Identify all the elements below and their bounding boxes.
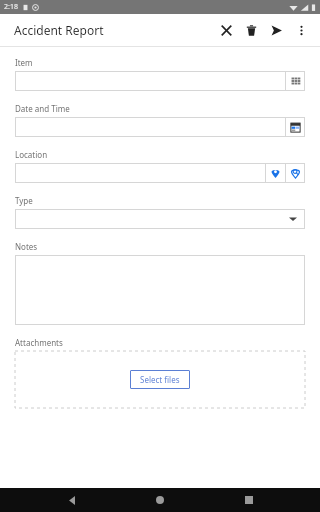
staticText: Accident Report	[14, 22, 104, 38]
staticText: Type	[15, 195, 33, 206]
button[interactable]: Scan item	[286, 71, 305, 91]
staticText: Select files	[140, 374, 180, 385]
button[interactable]: Delete	[239, 18, 264, 43]
button[interactable]: Close	[214, 18, 239, 43]
button[interactable]: Back	[55, 488, 89, 512]
button[interactable]: Home	[143, 488, 177, 512]
button[interactable]: Search location	[286, 163, 305, 183]
button[interactable]	[15, 255, 305, 325]
staticText: Attachments	[15, 337, 63, 348]
staticText: Notes	[15, 241, 38, 252]
staticText: 2:18	[4, 2, 18, 12]
button[interactable]	[15, 209, 305, 229]
staticText: Item	[15, 57, 33, 68]
button[interactable]: Pick date and time	[15, 117, 305, 137]
button[interactable]: Current location	[15, 163, 305, 183]
button[interactable]: Scan item	[15, 71, 305, 91]
staticText: Location	[15, 149, 48, 160]
staticText: Date and Time	[15, 103, 70, 114]
button[interactable]: Current location	[266, 163, 285, 183]
button[interactable]: Pick date and time	[286, 117, 305, 137]
button[interactable]: Select files	[130, 370, 190, 389]
button[interactable]: More options	[289, 18, 314, 43]
button[interactable]: Recent apps	[232, 488, 266, 512]
button[interactable]: Send	[264, 18, 289, 43]
